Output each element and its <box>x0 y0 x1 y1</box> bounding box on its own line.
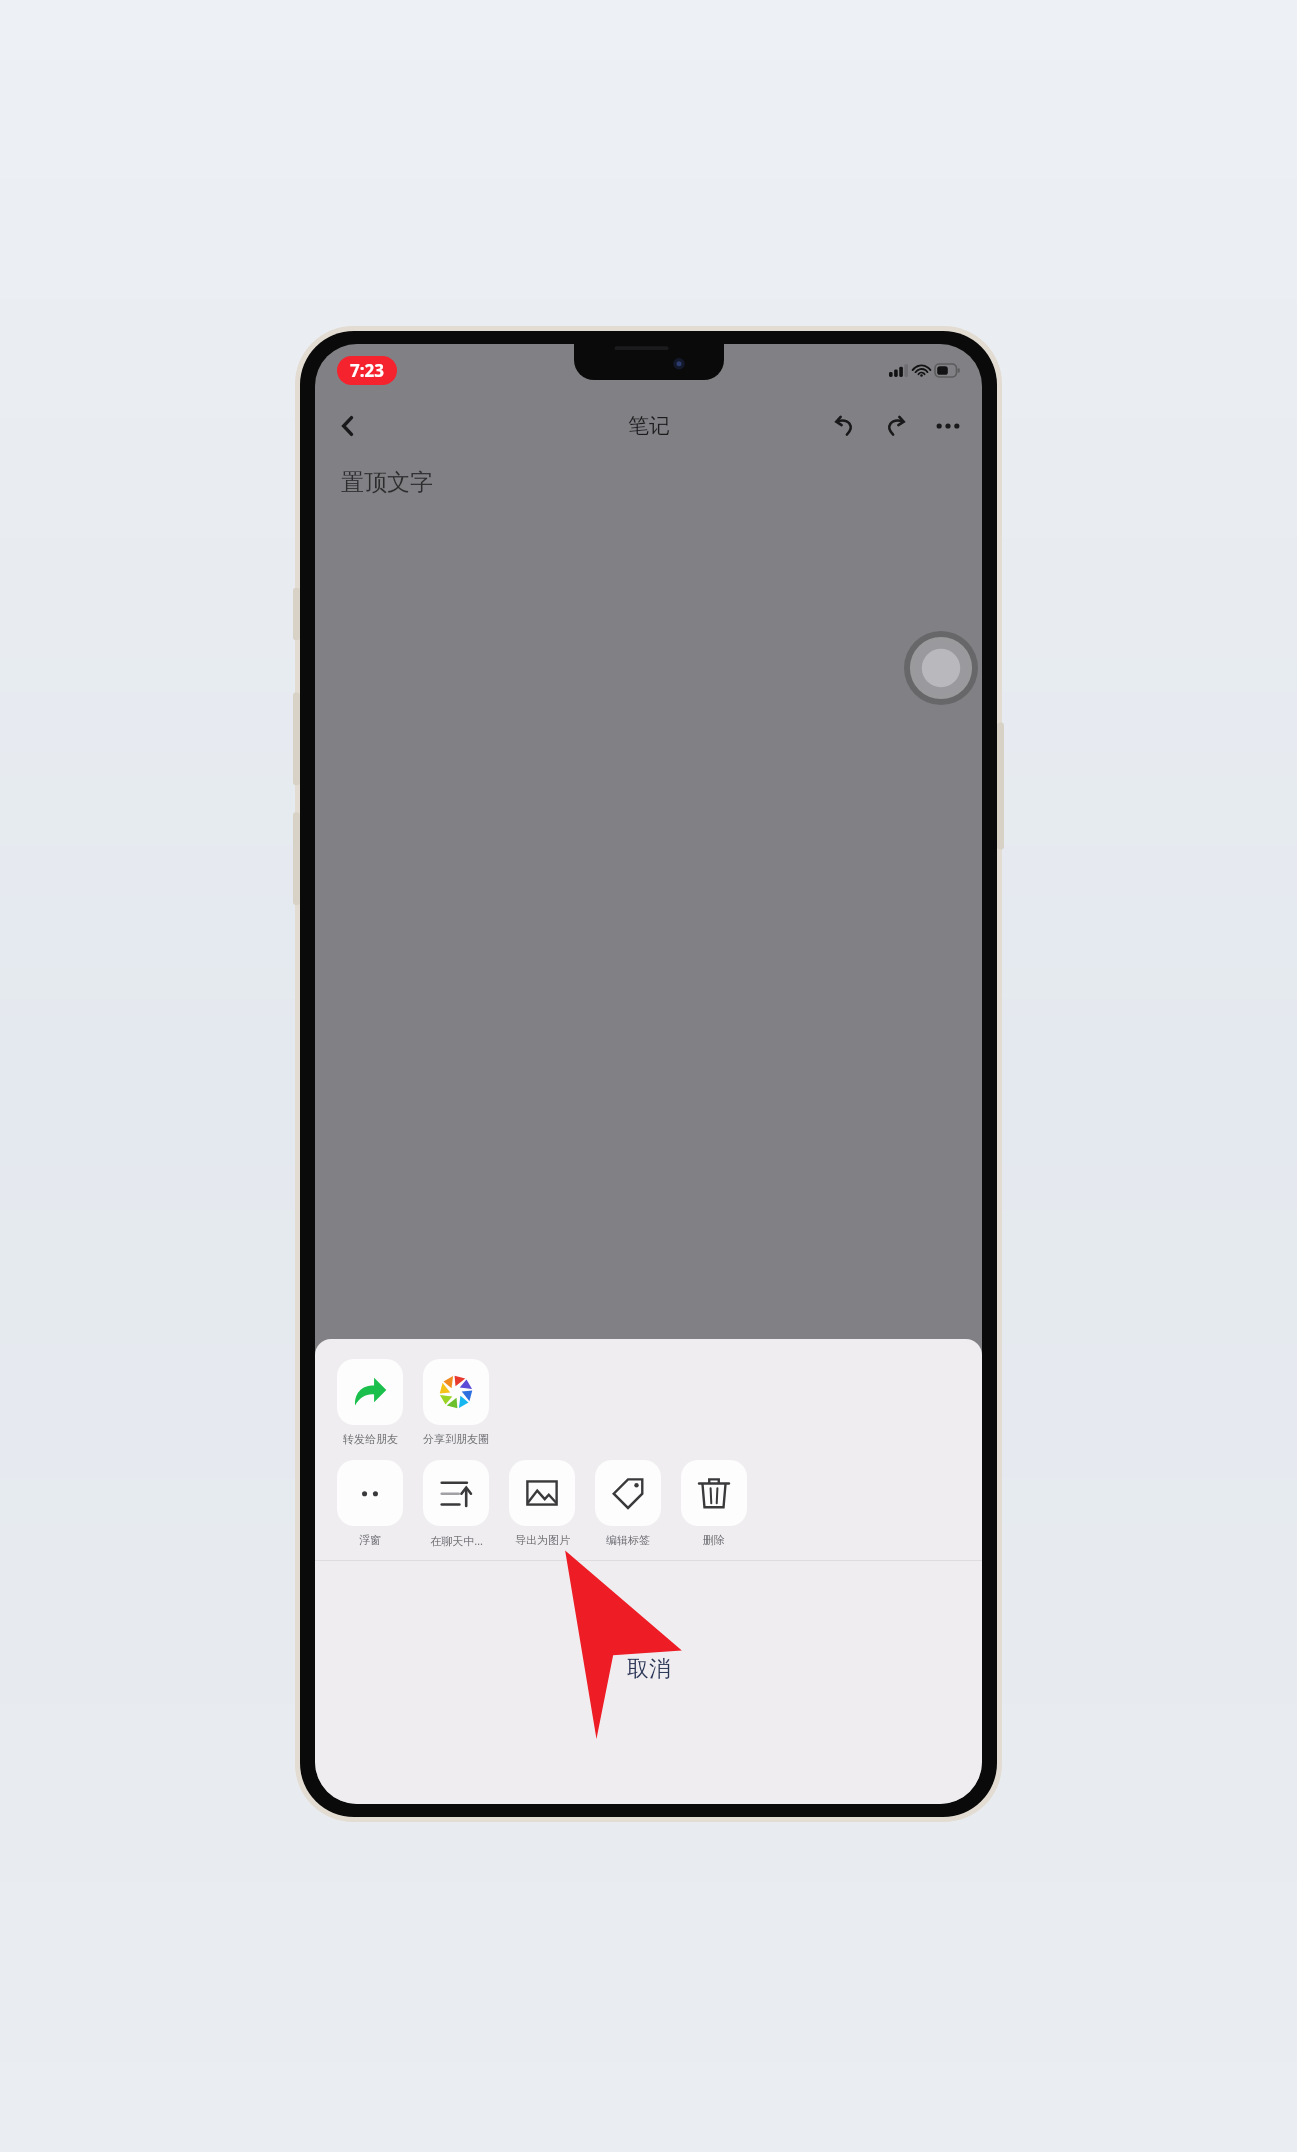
staticText: 笔记 <box>628 413 670 439</box>
staticText: 7:23 <box>350 359 384 382</box>
button[interactable]: 删除 <box>681 1460 747 1547</box>
button[interactable]: 编辑标签 <box>595 1460 661 1547</box>
staticText: 转发给朋友 <box>343 1432 398 1446</box>
button[interactable]: Undo <box>822 404 866 448</box>
button[interactable]: 在聊天中… <box>423 1460 489 1548</box>
staticText: 删除 <box>703 1533 725 1547</box>
button[interactable]: AssistiveTouch <box>904 631 978 705</box>
button[interactable]: 取消 <box>315 1561 982 1804</box>
button[interactable]: Back <box>325 403 371 449</box>
staticText: 在聊天中… <box>430 1533 483 1548</box>
staticText: 编辑标签 <box>606 1533 650 1547</box>
button[interactable]: 浮窗 <box>337 1460 403 1547</box>
staticText: 取消 <box>627 1655 671 1683</box>
staticText: 导出为图片 <box>515 1533 570 1547</box>
button[interactable]: Redo <box>874 404 918 448</box>
staticText: 置顶文字 <box>341 468 433 497</box>
button[interactable]: 导出为图片 <box>509 1460 575 1547</box>
staticText: 分享到朋友圈 <box>423 1432 489 1446</box>
staticText: 浮窗 <box>359 1533 381 1547</box>
button[interactable]: More options <box>926 404 970 448</box>
button[interactable]: 分享到朋友圈 <box>423 1359 489 1446</box>
button[interactable]: 转发给朋友 <box>337 1359 403 1446</box>
